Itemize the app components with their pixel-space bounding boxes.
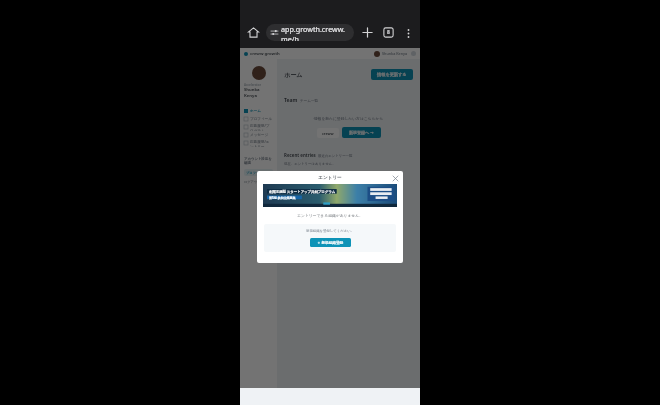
staticText: 創業支援型 スタートアップ共創プログラム	[269, 189, 336, 194]
button[interactable]: メッセージ	[244, 131, 273, 139]
staticText: エントリー	[318, 175, 342, 181]
button[interactable]: ホーム	[244, 107, 273, 115]
staticText: Team	[284, 97, 298, 104]
button[interactable]: ＋ 新規組織登録	[310, 238, 351, 247]
staticText: メッセージ	[250, 133, 269, 138]
button[interactable]: Close	[391, 174, 399, 182]
staticText: ホーム	[284, 71, 303, 79]
staticText: app.growth.creww.me/h	[281, 24, 349, 41]
button[interactable]: More options	[401, 26, 415, 40]
staticText: 応募履歴/エントリー	[250, 139, 273, 147]
staticText: Shunka Kenya	[382, 51, 408, 56]
button[interactable]: 創業支援型 スタートアップ共創プログラム	[263, 184, 397, 207]
button[interactable]: Tabs	[381, 25, 396, 40]
staticText: チーム一覧	[300, 99, 319, 104]
staticText: Shunka Kenya	[244, 87, 273, 99]
staticText: プロフィール編集	[246, 171, 272, 175]
staticText: creww growth	[250, 51, 280, 57]
staticText: 新規登録へ →	[349, 130, 374, 135]
staticText: 新規組織を登録してください。	[306, 229, 355, 233]
button[interactable]: 応募履歴/エントリー	[244, 139, 273, 147]
button[interactable]: New tab	[360, 25, 375, 40]
staticText: ログアウト	[244, 180, 261, 184]
button[interactable]: Home	[245, 24, 262, 41]
button[interactable]: プロフィール	[244, 115, 273, 123]
staticText: エントリーできる組織がありません。	[257, 213, 403, 218]
staticText: 最近のエントリー一覧	[318, 154, 353, 158]
staticText: Accelerator	[244, 83, 261, 87]
staticText: ホーム	[250, 109, 261, 114]
staticText: 応募履歴/プログラム	[250, 123, 273, 131]
staticText: Recent entries	[284, 152, 316, 158]
button[interactable]: 情報を更新する	[371, 69, 413, 80]
button[interactable]: プロフィール編集	[244, 169, 273, 176]
staticText: 現在、エントリーはありません。	[284, 162, 336, 166]
button[interactable]: 応募履歴/プログラム	[244, 123, 273, 131]
staticText: 情報を更新する	[377, 72, 407, 77]
staticText: 一般社団法人...	[287, 214, 308, 217]
staticText: ＋ 新規組織登録	[317, 240, 344, 245]
button[interactable]: creww	[317, 128, 339, 138]
staticText: 8	[387, 29, 390, 36]
staticText: アカウント設定を確認	[244, 157, 273, 165]
button[interactable]: app.growth.creww.me/h	[266, 24, 354, 41]
staticText: creww	[322, 131, 334, 136]
staticText: プロフィール	[250, 117, 272, 122]
staticText: 情報を新たに登録したい方はこちらから	[284, 116, 413, 121]
button[interactable]: 新規登録へ →	[342, 127, 381, 138]
staticText: 第5期 参加企業募集	[269, 196, 296, 200]
